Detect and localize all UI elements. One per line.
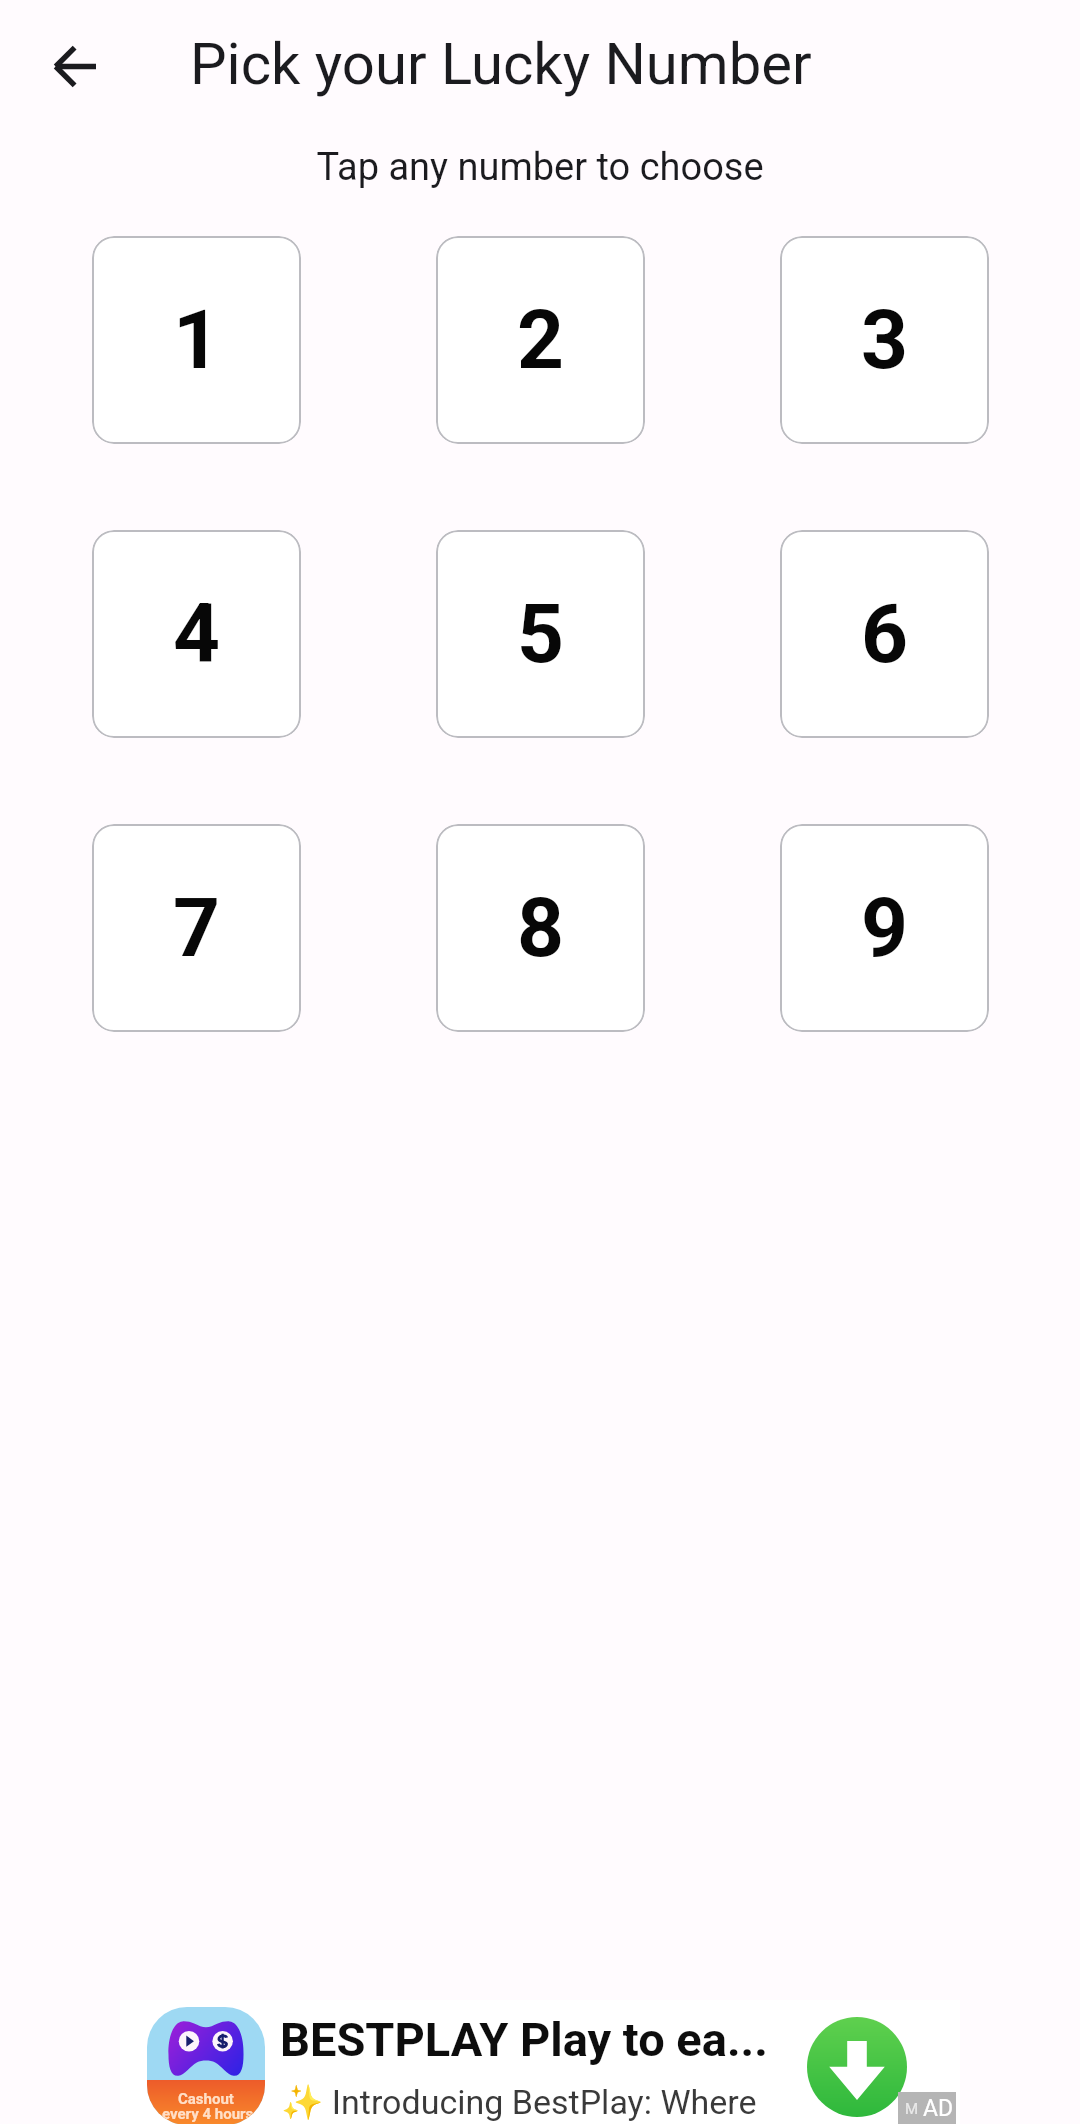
button[interactable]: 4	[92, 530, 301, 738]
staticText: Tap any number to choose	[0, 145, 1080, 190]
staticText: Pick your Lucky Number	[190, 30, 812, 98]
staticText: ✨ Introducing BestPlay: Where	[281, 2082, 757, 2122]
button[interactable]: 9	[780, 824, 989, 1032]
staticText: 2	[517, 292, 565, 388]
button[interactable]: 5	[436, 530, 645, 738]
staticText: every 4 hours	[162, 2105, 254, 2123]
staticText: 3	[861, 292, 909, 388]
button[interactable]: Back	[29, 21, 119, 111]
staticText: 6	[861, 586, 909, 682]
button[interactable]: Cashout	[120, 2000, 960, 2124]
button[interactable]: 7	[92, 824, 301, 1032]
staticText: Cashout	[178, 2090, 234, 2108]
button[interactable]: Install	[807, 2017, 907, 2117]
button[interactable]: 1	[92, 236, 301, 444]
button[interactable]: 6	[780, 530, 989, 738]
staticText: AD	[923, 2095, 954, 2122]
button[interactable]: 8	[436, 824, 645, 1032]
staticText: 8	[517, 880, 565, 976]
button[interactable]: 2	[436, 236, 645, 444]
staticText: BESTPLAY Play to ea...	[280, 2012, 768, 2067]
button[interactable]: 3	[780, 236, 989, 444]
staticText: 9	[861, 880, 909, 976]
staticText: M	[905, 2100, 919, 2118]
staticText: 4	[173, 586, 221, 682]
staticText: 5	[517, 586, 565, 682]
staticText: 7	[173, 880, 221, 976]
staticText: 1	[173, 292, 221, 388]
